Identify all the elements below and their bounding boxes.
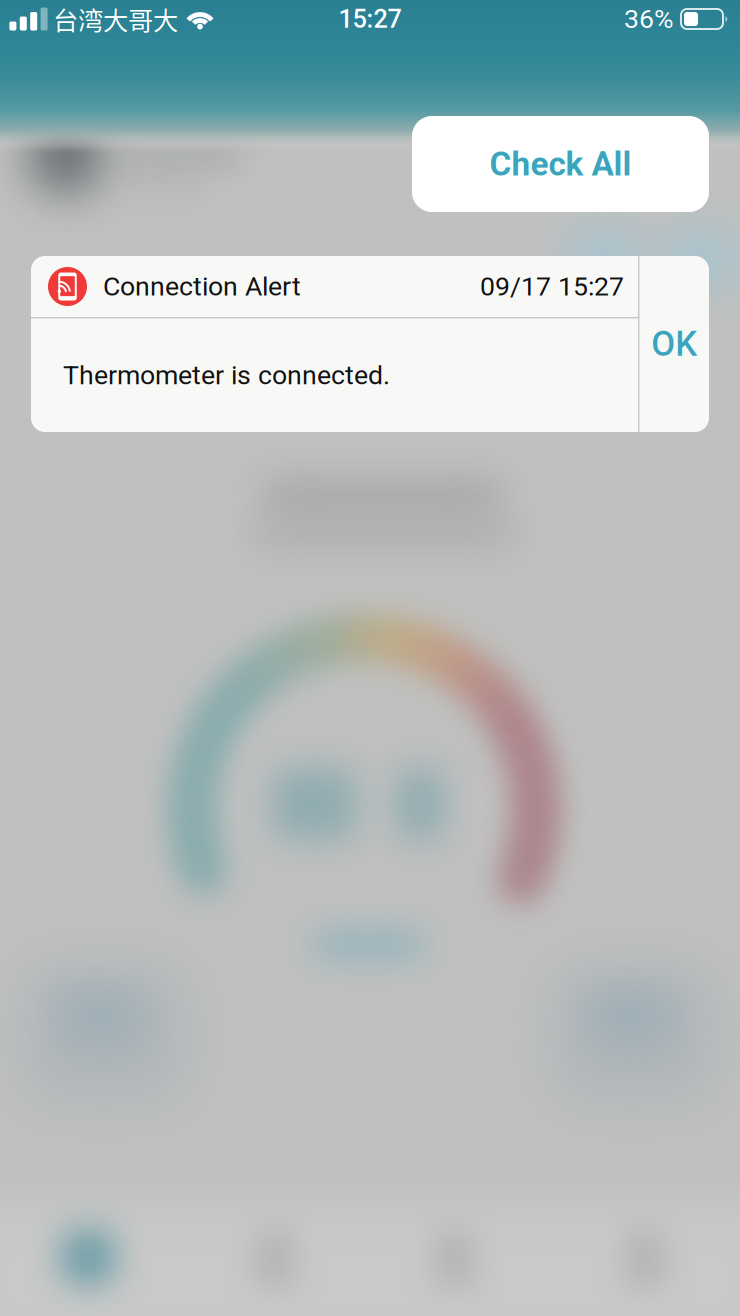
staticText: 09/17 15:27 xyxy=(480,271,624,302)
button[interactable]: OK xyxy=(639,256,709,432)
staticText: Thermometer is connected. xyxy=(63,360,390,391)
staticText: Check All xyxy=(489,144,631,184)
staticText: Connection Alert xyxy=(103,271,301,302)
staticText: OK xyxy=(651,324,697,364)
staticText: 36% xyxy=(624,3,674,35)
staticText: 台湾大哥大 xyxy=(53,1,178,37)
button[interactable]: Check All xyxy=(412,116,709,212)
staticText: 15:27 xyxy=(338,4,401,34)
